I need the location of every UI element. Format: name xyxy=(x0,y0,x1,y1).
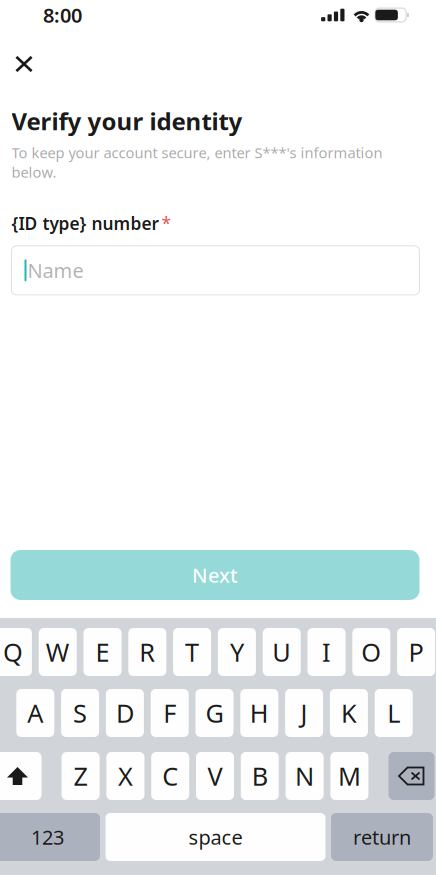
staticText: Q xyxy=(3,635,23,669)
staticText: return xyxy=(353,824,411,850)
staticText: 8:00 xyxy=(43,2,82,28)
button[interactable]: A xyxy=(16,689,54,737)
staticText: * xyxy=(161,212,171,235)
button[interactable]: 123 xyxy=(0,813,100,861)
button[interactable]: J xyxy=(285,689,323,737)
staticText: space xyxy=(188,824,242,850)
staticText: L xyxy=(387,696,400,730)
staticText: below. xyxy=(11,162,56,182)
button[interactable]: V xyxy=(196,752,234,800)
button[interactable]: S xyxy=(61,689,99,737)
button[interactable]: W xyxy=(39,628,77,676)
staticText: I xyxy=(322,635,331,669)
button[interactable]: Close xyxy=(1,43,47,85)
staticText: K xyxy=(341,696,357,730)
button[interactable]: Y xyxy=(218,628,256,676)
button[interactable]: Delete xyxy=(388,752,434,800)
button[interactable]: Next xyxy=(10,550,419,600)
staticText: Name xyxy=(27,257,83,284)
button[interactable]: B xyxy=(241,752,279,800)
button[interactable]: M xyxy=(330,752,368,800)
button[interactable]: Q xyxy=(0,628,32,676)
staticText: 123 xyxy=(31,824,64,850)
button[interactable]: R xyxy=(128,628,166,676)
button[interactable]: F xyxy=(151,689,189,737)
staticText: E xyxy=(95,635,109,669)
button[interactable]: Z xyxy=(62,752,100,800)
staticText: H xyxy=(250,696,269,730)
staticText: O xyxy=(361,635,381,669)
staticText: Verify your identity xyxy=(11,105,242,137)
staticText: W xyxy=(46,635,70,669)
button[interactable]: O xyxy=(352,628,390,676)
staticText: M xyxy=(338,759,361,793)
staticText: R xyxy=(139,635,155,669)
button[interactable]: D xyxy=(106,689,144,737)
staticText: To keep your account secure, enter S***'… xyxy=(11,143,382,162)
button[interactable]: L xyxy=(375,689,413,737)
staticText: P xyxy=(409,635,424,669)
staticText: J xyxy=(301,696,308,730)
staticText: G xyxy=(205,696,223,730)
button[interactable]: G xyxy=(195,689,233,737)
button[interactable]: return xyxy=(331,813,433,861)
button[interactable]: E xyxy=(83,628,121,676)
button[interactable]: space xyxy=(105,813,325,861)
staticText: A xyxy=(27,696,43,730)
staticText: {ID type} number xyxy=(11,212,159,235)
staticText: U xyxy=(272,635,291,669)
staticText: D xyxy=(116,696,134,730)
button[interactable]: U xyxy=(263,628,301,676)
button[interactable]: C xyxy=(151,752,189,800)
button[interactable]: N xyxy=(286,752,324,800)
staticText: Z xyxy=(74,759,88,793)
button[interactable]: T xyxy=(173,628,211,676)
staticText: C xyxy=(162,759,178,793)
staticText: B xyxy=(252,759,268,793)
button[interactable]: Shift xyxy=(0,752,41,800)
staticText: V xyxy=(207,759,222,793)
button[interactable]: H xyxy=(240,689,278,737)
staticText: N xyxy=(295,759,314,793)
staticText: T xyxy=(185,635,199,669)
staticText: Y xyxy=(230,635,244,669)
staticText: Next xyxy=(192,562,238,588)
button[interactable]: K xyxy=(330,689,368,737)
staticText: X xyxy=(118,759,133,793)
button[interactable]: I xyxy=(307,628,345,676)
button[interactable]: P xyxy=(397,628,435,676)
staticText: S xyxy=(73,696,87,730)
staticText: F xyxy=(163,696,176,730)
button[interactable]: X xyxy=(106,752,144,800)
